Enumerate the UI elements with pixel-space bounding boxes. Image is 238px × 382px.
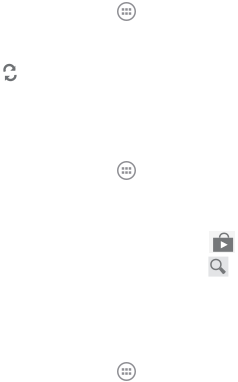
button[interactable]: Refresh bbox=[2, 64, 19, 83]
button[interactable]: Home bbox=[117, 2, 136, 21]
button[interactable]: Get it on Google Play bbox=[209, 231, 235, 253]
button[interactable]: Home bbox=[117, 362, 136, 381]
button[interactable]: Search bbox=[208, 257, 228, 277]
